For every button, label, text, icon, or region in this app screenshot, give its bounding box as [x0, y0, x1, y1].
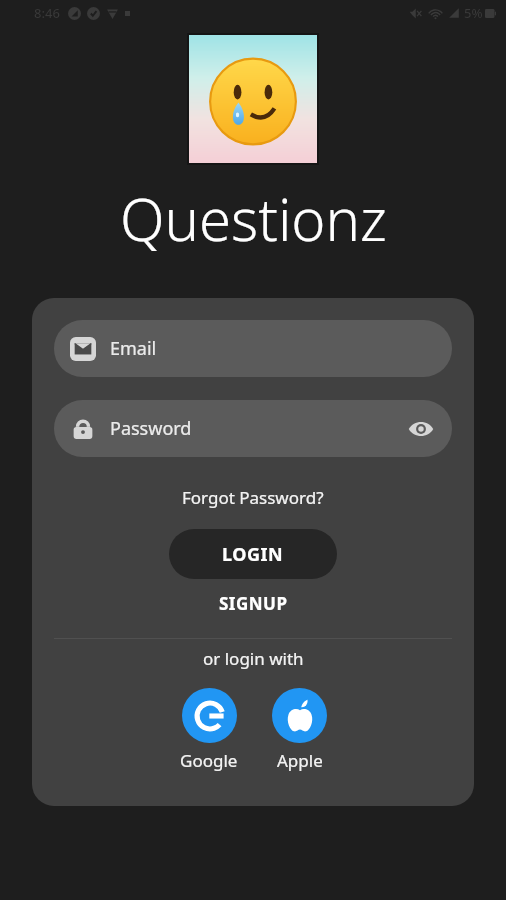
staticText: Forgot Password?	[182, 486, 324, 509]
button[interactable]: SIGNUP	[211, 589, 296, 618]
button[interactable]: Password	[54, 400, 452, 457]
staticText: 8:46	[34, 4, 60, 22]
staticText: Google	[180, 749, 238, 772]
button[interactable]: Sign in with Google	[176, 686, 242, 774]
staticText: 5%	[464, 4, 483, 22]
staticText: Password	[110, 416, 404, 441]
staticText: LOGIN	[222, 542, 284, 567]
button[interactable]: Sign in with Apple	[268, 686, 331, 774]
staticText: SIGNUP	[219, 592, 288, 615]
button[interactable]: Show password	[404, 412, 438, 446]
staticText: Apple	[277, 749, 323, 772]
staticText: Questionz	[120, 179, 387, 258]
button[interactable]: Email	[54, 320, 452, 377]
staticText: Email	[110, 336, 438, 361]
button[interactable]: LOGIN	[169, 529, 337, 579]
staticText: or login with	[203, 647, 304, 670]
button[interactable]: Forgot Password?	[176, 483, 330, 512]
